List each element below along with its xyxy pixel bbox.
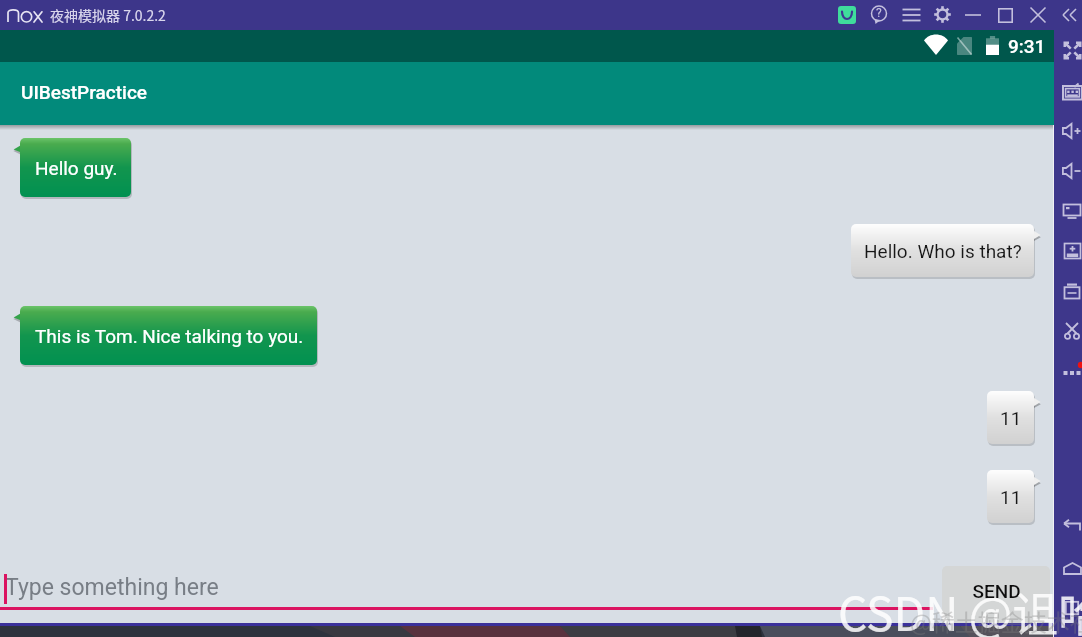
button[interactable]: 11 — [987, 391, 1034, 444]
button[interactable]: Minimize — [965, 8, 981, 22]
button[interactable]: Close — [1030, 7, 1046, 23]
staticText: CSDN @诅哈 — [838, 578, 1082, 637]
staticText: UIBestPractice — [21, 81, 148, 103]
button[interactable]: Help — [869, 5, 889, 25]
button[interactable]: App store — [838, 6, 856, 24]
button[interactable]: More — [1054, 359, 1082, 383]
staticText: Type something here — [5, 574, 219, 601]
button[interactable]: Hello. Who is that? — [851, 224, 1034, 277]
staticText: ? — [876, 6, 882, 20]
button[interactable]: Install APK — [1054, 239, 1082, 263]
staticText: @稀土掘金技术社区 — [910, 604, 1082, 637]
button[interactable]: Collapse sidebar — [1062, 7, 1078, 23]
staticText: This is Tom. Nice talking to you. — [35, 325, 304, 347]
staticText: 夜神模拟器 7.0.2.2 — [50, 5, 166, 25]
staticText: 9:31 — [1008, 35, 1046, 57]
staticText: 11 — [1000, 407, 1022, 429]
staticText: 11 — [1000, 486, 1022, 508]
staticText: SEND — [972, 580, 1021, 602]
button[interactable]: Volume up — [1054, 119, 1082, 143]
staticText: Hello guy. — [35, 157, 118, 179]
button[interactable]: Hello guy. — [20, 138, 131, 197]
button[interactable]: Volume down — [1054, 159, 1082, 183]
button[interactable]: Home — [1054, 556, 1082, 580]
button[interactable]: Maximize — [998, 8, 1013, 23]
button[interactable]: Screenshot — [1054, 199, 1082, 223]
staticText: Hello. Who is that? — [864, 240, 1022, 262]
button[interactable]: SEND — [942, 566, 1050, 623]
button[interactable]: Settings — [933, 5, 952, 24]
button[interactable]: Shared folder — [1054, 279, 1082, 303]
button[interactable]: Back — [1054, 514, 1082, 538]
button[interactable]: Recents — [1054, 596, 1082, 620]
button[interactable]: Keyboard — [1054, 79, 1082, 103]
button[interactable]: Cut — [1054, 319, 1082, 343]
button[interactable]: Menu — [902, 8, 921, 22]
button[interactable]: Fullscreen — [1054, 38, 1082, 62]
button[interactable]: This is Tom. Nice talking to you. — [20, 306, 317, 365]
button[interactable]: 11 — [987, 470, 1034, 523]
